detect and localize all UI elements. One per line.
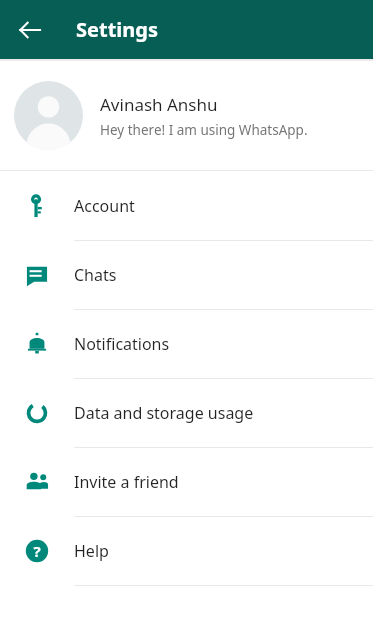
button[interactable]: Invite a friend xyxy=(0,448,373,516)
staticText: Data and storage usage xyxy=(74,402,254,424)
button[interactable]: Back xyxy=(10,10,50,50)
staticText: Chats xyxy=(74,264,117,286)
button[interactable]: Chats xyxy=(0,241,373,309)
staticText: Invite a friend xyxy=(74,471,179,493)
staticText: ? xyxy=(33,541,41,561)
button[interactable]: ? xyxy=(0,517,373,585)
button[interactable]: Account xyxy=(0,171,373,240)
staticText: Hey there! I am using WhatsApp. xyxy=(100,121,308,139)
button[interactable]: Notifications xyxy=(0,310,373,378)
button[interactable]: Avinash Anshu xyxy=(0,61,373,170)
staticText: Notifications xyxy=(74,333,170,355)
staticText: Account xyxy=(74,195,135,217)
button[interactable]: Data and storage usage xyxy=(0,379,373,447)
staticText: Settings xyxy=(76,16,158,43)
staticText: Avinash Anshu xyxy=(100,93,218,116)
staticText: Help xyxy=(74,540,109,562)
